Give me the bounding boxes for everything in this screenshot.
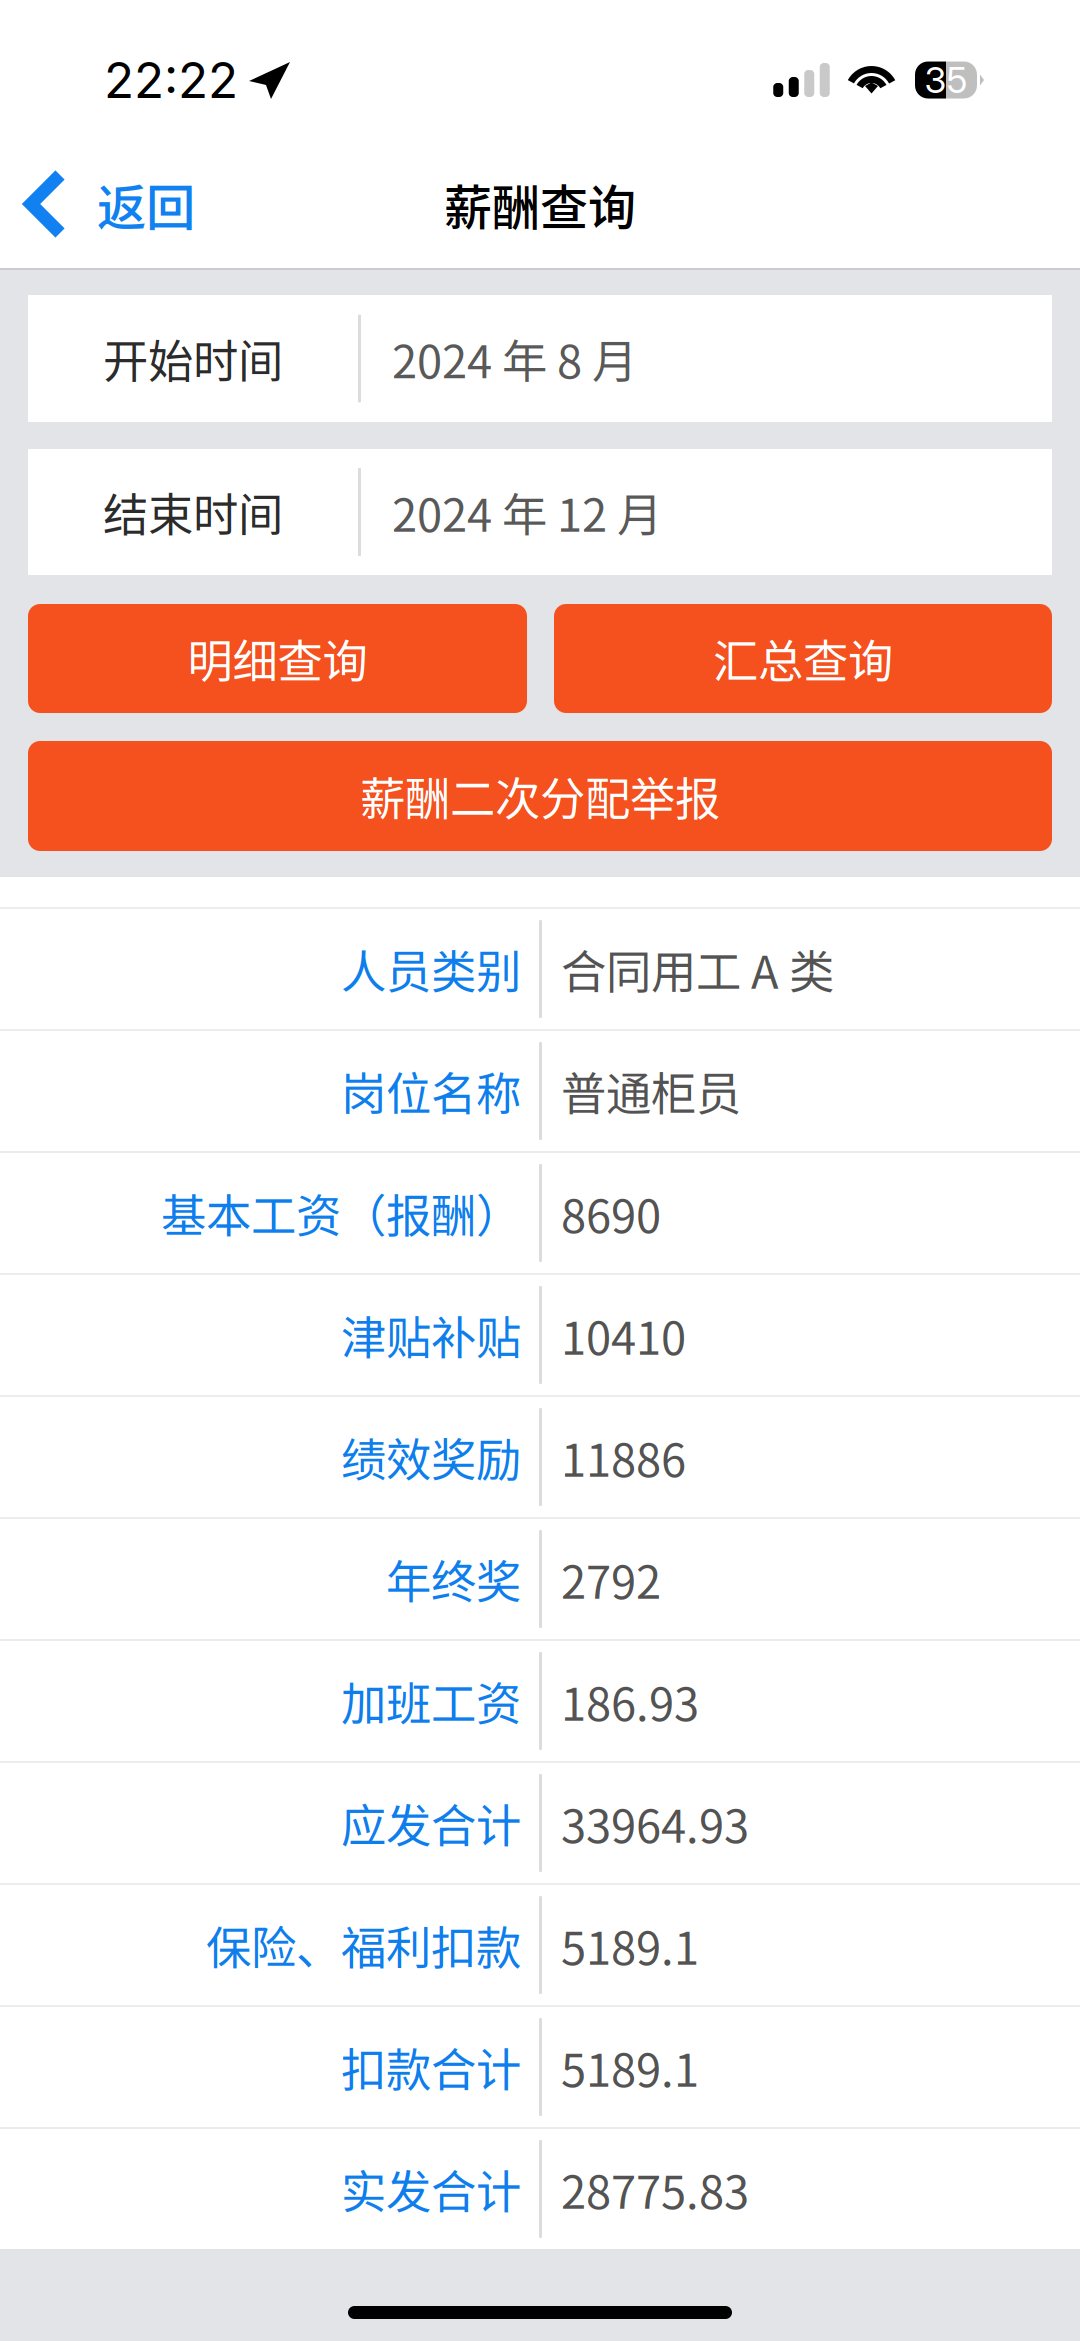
staticText: 22:22: [104, 50, 238, 110]
staticText: 186.93: [561, 1668, 699, 1734]
staticText: 加班工资: [341, 1668, 521, 1734]
staticText: 28775.83: [561, 2156, 749, 2222]
staticText: 11886: [561, 1424, 686, 1490]
staticText: 33964.93: [561, 1790, 749, 1856]
staticText: 岗位名称: [341, 1058, 521, 1124]
button[interactable]: 结束时间: [28, 449, 1052, 575]
staticText: 绩效奖励: [341, 1424, 521, 1490]
staticText: 津贴补贴: [341, 1302, 521, 1368]
staticText: 返回: [97, 168, 195, 240]
button[interactable]: 薪酬二次分配举报: [28, 741, 1052, 851]
staticText: 明细查询: [187, 626, 367, 691]
staticText: 保险、福利扣款: [206, 1912, 521, 1978]
staticText: 合同用工 A 类: [561, 936, 834, 1002]
staticText: 10410: [561, 1302, 686, 1368]
staticText: 实发合计: [341, 2156, 521, 2222]
staticText: 应发合计: [341, 1790, 521, 1856]
staticText: 年终奖: [386, 1546, 521, 1612]
staticText: 5189.1: [561, 2034, 699, 2100]
staticText: 5189.1: [561, 1912, 699, 1978]
button[interactable]: 汇总查询: [554, 604, 1052, 713]
button[interactable]: 返回: [0, 140, 225, 268]
staticText: 薪酬二次分配举报: [360, 763, 720, 829]
staticText: 35: [924, 58, 967, 102]
staticText: 基本工资（报酬）: [161, 1180, 521, 1246]
button[interactable]: 明细查询: [28, 604, 527, 713]
staticText: 8690: [561, 1180, 661, 1246]
staticText: 普通柜员: [561, 1058, 741, 1124]
staticText: 薪酬查询: [444, 169, 636, 239]
staticText: 2024 年 12 月: [392, 479, 662, 545]
staticText: 结束时间: [103, 479, 283, 545]
staticText: 人员类别: [341, 936, 521, 1002]
staticText: 2024 年 8 月: [392, 326, 637, 391]
staticText: 2792: [561, 1546, 661, 1612]
button[interactable]: 开始时间: [28, 295, 1052, 422]
staticText: 扣款合计: [341, 2034, 521, 2100]
staticText: 汇总查询: [713, 626, 893, 691]
staticText: 开始时间: [103, 326, 283, 391]
